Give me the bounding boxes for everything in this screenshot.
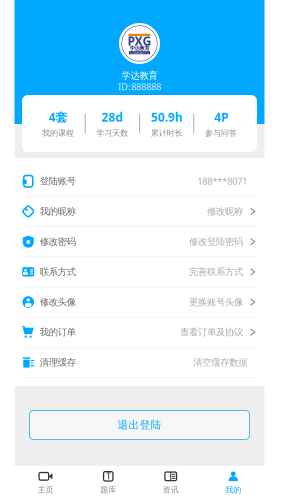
staticText: 修改头像 <box>40 296 76 308</box>
staticText: 登陆账号 <box>40 175 76 187</box>
button[interactable]: 我的昵称 <box>14 197 264 226</box>
button[interactable]: 修改头像 <box>14 287 264 317</box>
staticText: 完善联系方式 <box>189 266 243 278</box>
staticText: T <box>106 471 110 482</box>
button[interactable]: 登陆账号 <box>14 166 264 196</box>
button[interactable]: 修改密码 <box>14 227 264 256</box>
staticText: ID:888888 <box>118 80 161 93</box>
button[interactable]: 退出登陆 <box>29 410 249 439</box>
staticText: 题库 <box>100 485 116 495</box>
staticText: 清空缓存数据 <box>193 357 247 368</box>
button[interactable]: 联系方式 <box>14 257 264 287</box>
staticText: 学达教育 <box>129 45 149 51</box>
staticText: 我的课程 <box>42 128 74 138</box>
staticText: 参与问答 <box>205 128 237 138</box>
staticText: 188***8071 <box>197 175 247 187</box>
button[interactable]: 主页 <box>14 466 77 500</box>
staticText: 退出登陆 <box>117 418 161 431</box>
button[interactable]: 资讯 <box>139 466 202 500</box>
staticText: 主页 <box>38 485 54 495</box>
staticText: 学习天数 <box>96 128 128 138</box>
staticText: 4P <box>214 109 228 125</box>
staticText: 清理缓存 <box>40 357 76 368</box>
staticText: 28d <box>101 109 123 125</box>
staticText: PXG <box>127 33 151 49</box>
staticText: 4套 <box>48 109 67 125</box>
staticText: 50.9h <box>151 109 183 125</box>
staticText: 联系方式 <box>40 266 76 278</box>
staticText: 修改密码 <box>40 236 76 247</box>
button[interactable]: 我的 <box>202 466 264 500</box>
button[interactable]: 我的订单 <box>14 317 264 347</box>
staticText: 修改昵称 <box>207 206 243 217</box>
staticText: XUEDAJIAOYU <box>130 51 149 54</box>
staticText: 我的订单 <box>40 326 76 338</box>
staticText: 累计时长 <box>151 128 183 138</box>
staticText: 修改登陆密码 <box>189 236 243 247</box>
staticText: 我的 <box>225 485 241 495</box>
staticText: 学达教育 <box>121 70 157 81</box>
button[interactable]: T <box>77 466 139 500</box>
staticText: 更换账号头像 <box>189 296 243 308</box>
staticText: 资讯 <box>163 485 179 495</box>
staticText: 我的昵称 <box>40 206 76 217</box>
staticText: 查看订单及协议 <box>180 326 243 338</box>
button[interactable]: 清理缓存 <box>14 348 264 377</box>
